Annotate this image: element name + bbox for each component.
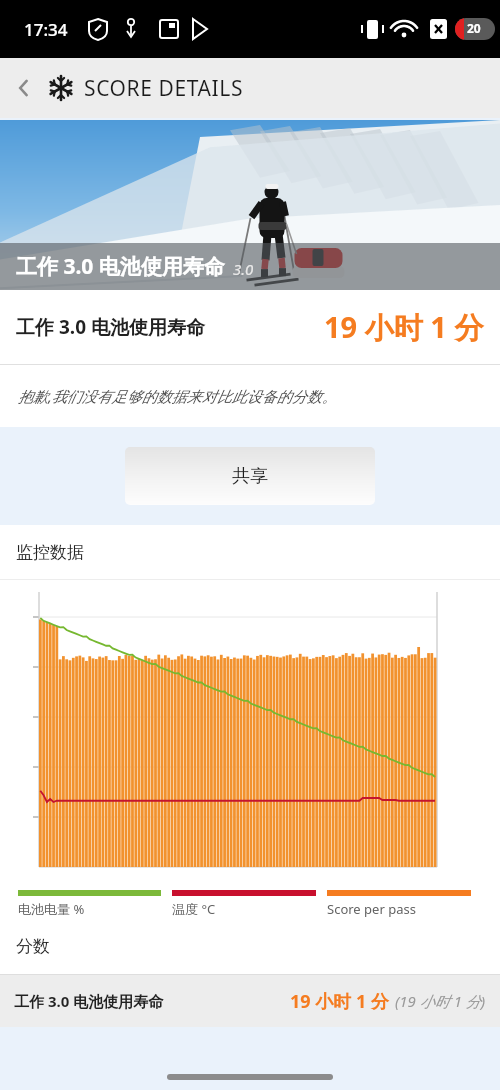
staticText: SCORE DETAILS bbox=[84, 74, 244, 103]
staticText: 17:34 bbox=[24, 18, 68, 41]
staticText: 19 小时 1 分 bbox=[290, 989, 389, 1014]
staticText: 温度 °C bbox=[172, 900, 216, 918]
staticText: 电池电量 % bbox=[18, 900, 85, 918]
staticText: Score per pass bbox=[327, 900, 416, 918]
staticText: 监控数据 bbox=[16, 542, 84, 563]
staticText: 20 bbox=[467, 20, 481, 36]
staticText: (19 小时 1 分) bbox=[395, 991, 486, 1011]
staticText: 共享 bbox=[232, 465, 268, 488]
staticText: 19 小时 1 分 bbox=[324, 307, 484, 347]
button[interactable]: 工作 3.0 电池使用寿命 bbox=[14, 975, 486, 1027]
staticText: 工作 3.0 电池使用寿命 bbox=[14, 991, 164, 1011]
staticText: 3.0 bbox=[233, 259, 254, 279]
staticText: 抱歉,我们没有足够的数据来对比此设备的分数。 bbox=[18, 386, 337, 406]
staticText: 分数 bbox=[16, 936, 50, 957]
button[interactable]: Back bbox=[0, 64, 48, 112]
staticText: 工作 3.0 电池使用寿命 bbox=[16, 252, 225, 281]
button[interactable]: 共享 bbox=[125, 447, 375, 505]
staticText: 工作 3.0 电池使用寿命 bbox=[16, 314, 205, 340]
